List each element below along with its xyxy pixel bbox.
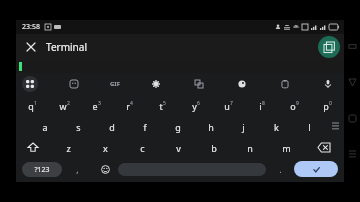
staticText: 23:58 — [22, 22, 40, 32]
button[interactable]: t — [146, 95, 179, 116]
button[interactable]: Translate — [191, 76, 207, 92]
staticText: 5 — [163, 100, 166, 107]
button[interactable]: s — [62, 116, 95, 137]
button[interactable]: w — [48, 95, 80, 116]
button[interactable]: ?123 — [22, 162, 62, 177]
button[interactable]: d — [95, 116, 128, 137]
staticText: e — [92, 100, 98, 112]
staticText: Terminal — [46, 40, 87, 54]
staticText: b — [211, 142, 217, 154]
button[interactable]: More — [326, 116, 344, 137]
staticText: q — [28, 100, 34, 112]
button[interactable]: l — [293, 116, 326, 137]
staticText: o — [290, 100, 296, 112]
button[interactable]: Emoji — [92, 158, 118, 180]
button[interactable]: Close — [20, 36, 42, 58]
button[interactable]: y — [179, 95, 212, 116]
button[interactable]: Comma — [62, 158, 92, 180]
button[interactable]: GIF — [110, 80, 120, 88]
staticText: d — [109, 121, 115, 133]
button[interactable]: n — [232, 137, 268, 158]
button[interactable]: Backspace — [304, 137, 344, 158]
button[interactable]: Settings — [148, 76, 164, 92]
button[interactable]: p — [311, 95, 344, 116]
staticText: v — [176, 142, 181, 154]
staticText: w — [59, 100, 67, 112]
staticText: 9 — [296, 100, 299, 107]
button[interactable]: b — [196, 137, 232, 158]
button[interactable]: Enter — [294, 161, 338, 177]
staticText: 8 — [262, 100, 265, 107]
button[interactable]: k — [260, 116, 293, 137]
staticText: , — [76, 163, 79, 175]
button[interactable]: r — [113, 95, 146, 116]
button[interactable]: v — [160, 137, 196, 158]
staticText: f — [143, 121, 147, 133]
button[interactable]: Nav 2 — [344, 110, 360, 126]
staticText: z — [66, 142, 71, 154]
staticText: l — [308, 121, 311, 133]
staticText: 6 — [197, 100, 200, 107]
staticText: j — [242, 121, 245, 133]
staticText: m — [282, 142, 291, 154]
button[interactable]: i — [245, 95, 278, 116]
button[interactable]: Tabs — [318, 36, 340, 58]
button[interactable]: Voice input — [320, 76, 336, 92]
button[interactable]: Sticker — [66, 76, 82, 92]
staticText: 7 — [230, 100, 233, 107]
button[interactable]: e — [80, 95, 113, 116]
staticText: h — [208, 121, 214, 133]
staticText: g — [175, 121, 181, 133]
staticText: t — [159, 100, 163, 112]
button[interactable]: q — [16, 95, 48, 116]
button[interactable]: Nav 0 — [344, 38, 360, 54]
staticText: 0 — [329, 100, 332, 107]
staticText: GIF — [110, 80, 120, 88]
staticText: s — [76, 121, 81, 133]
button[interactable]: Clipboard — [277, 76, 293, 92]
button[interactable]: x — [87, 137, 124, 158]
button[interactable]: u — [212, 95, 245, 116]
button[interactable]: z — [50, 137, 87, 158]
button[interactable]: g — [161, 116, 194, 137]
button[interactable]: j — [227, 116, 260, 137]
button[interactable]: Toolbar — [22, 76, 38, 92]
button[interactable]: Theme — [234, 76, 250, 92]
staticText: r — [126, 100, 130, 112]
staticText: k — [274, 121, 279, 133]
staticText: 1 — [34, 100, 37, 107]
button[interactable]: h — [194, 116, 227, 137]
button[interactable]: c — [124, 137, 160, 158]
button[interactable]: a — [28, 116, 62, 137]
staticText: c — [140, 142, 145, 154]
staticText: x — [103, 142, 108, 154]
staticText: p — [323, 100, 329, 112]
staticText: u — [224, 100, 230, 112]
button[interactable]: Period — [266, 158, 294, 180]
staticText: 4 — [130, 100, 133, 107]
button[interactable]: o — [278, 95, 311, 116]
button[interactable]: Nav 3 — [344, 146, 360, 162]
staticText: ?123 — [34, 165, 50, 175]
staticText: i — [259, 100, 262, 112]
button[interactable]: Shift — [16, 137, 50, 158]
staticText: n — [247, 142, 253, 154]
button[interactable]: Nav 1 — [344, 74, 360, 90]
staticText: y — [192, 100, 197, 112]
staticText: 3 — [98, 100, 101, 107]
staticText: a — [42, 121, 48, 133]
button[interactable]: m — [268, 137, 304, 158]
staticText: 2 — [67, 100, 70, 107]
button[interactable]: Space — [118, 163, 266, 176]
staticText: . — [279, 163, 282, 175]
button[interactable]: f — [128, 116, 161, 137]
